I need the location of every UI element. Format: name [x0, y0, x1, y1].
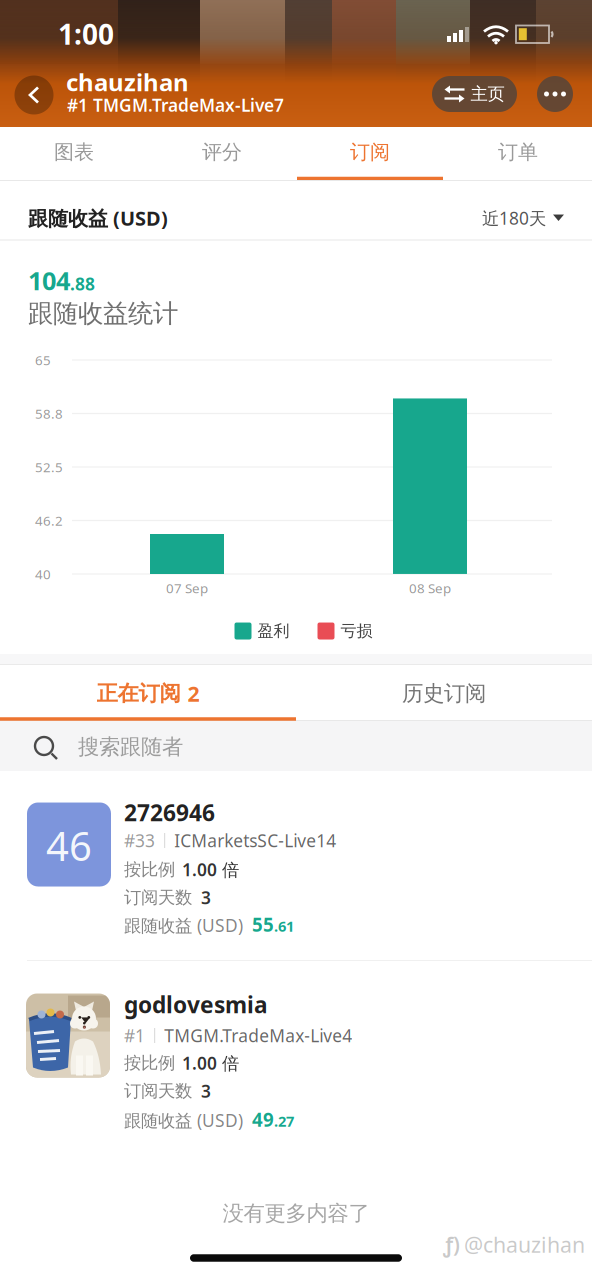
staticText: 1.00 倍: [182, 1051, 239, 1074]
staticText: 亏损: [340, 621, 372, 641]
staticText: 65: [35, 351, 51, 369]
staticText: 跟随收益 (USD): [28, 205, 168, 231]
button[interactable]: Search followers: [0, 721, 592, 771]
staticText: 2: [187, 679, 199, 708]
staticText: #1 TMGM.TradeMax-Live7: [67, 93, 284, 116]
staticText: 盈利: [257, 621, 289, 641]
staticText: 订阅: [350, 140, 390, 164]
staticText: 历史订阅: [402, 680, 486, 707]
staticText: .61: [274, 916, 294, 936]
staticText: 52.5: [35, 458, 63, 476]
staticText: 07 Sep: [166, 579, 208, 597]
staticText: TMGM.TradeMax-Live4: [164, 1024, 352, 1047]
button[interactable]: Back: [14, 75, 53, 114]
staticText: 1.00 倍: [182, 858, 239, 881]
staticText: #1: [124, 1024, 145, 1047]
staticText: 2726946: [124, 797, 215, 827]
staticText: 订阅天数: [124, 1080, 192, 1102]
staticText: 3: [201, 886, 211, 909]
staticText: 订单: [498, 140, 538, 164]
staticText: @chauzihan: [464, 1230, 585, 1259]
staticText: 1:00: [58, 15, 114, 53]
staticText: 08 Sep: [409, 579, 451, 597]
staticText: godlovesmia: [124, 989, 268, 1019]
staticText: .27: [274, 1111, 294, 1131]
staticText: 58.8: [35, 405, 63, 422]
button[interactable]: 图表: [0, 125, 148, 178]
button[interactable]: 46: [0, 771, 592, 961]
staticText: 正在订阅: [96, 680, 180, 707]
staticText: chauzihan: [66, 66, 189, 98]
button[interactable]: 近180天: [404, 200, 564, 236]
staticText: 搜索跟随者: [78, 734, 183, 760]
staticText: 跟随收益 (USD): [124, 1109, 243, 1132]
staticText: 3: [201, 1079, 211, 1102]
staticText: 订阅天数: [124, 887, 192, 908]
staticText: .88: [70, 272, 95, 295]
staticText: 49: [252, 1107, 274, 1132]
staticText: 55: [252, 912, 274, 937]
staticText: #33: [124, 829, 155, 852]
button[interactable]: 主页: [432, 76, 517, 112]
staticText: 40: [35, 565, 51, 583]
button[interactable]: 正在订阅: [0, 668, 296, 718]
staticText: 跟随收益统计: [28, 298, 178, 329]
staticText: 按比例: [124, 1052, 175, 1074]
staticText: 46: [46, 819, 92, 872]
button[interactable]: 订阅: [296, 125, 444, 178]
staticText: 没有更多内容了: [222, 1200, 369, 1227]
staticText: 跟随收益 (USD): [124, 914, 243, 937]
button[interactable]: 评分: [148, 125, 296, 178]
staticText: 46.2: [35, 512, 63, 529]
button[interactable]: 订单: [444, 125, 592, 178]
staticText: 图表: [54, 140, 94, 164]
staticText: 按比例: [124, 859, 175, 880]
staticText: 主页: [470, 83, 504, 105]
staticText: 评分: [202, 140, 242, 164]
button[interactable]: 历史订阅: [296, 668, 592, 718]
staticText: ICMarketsSC-Live14: [174, 829, 336, 852]
button[interactable]: More: [537, 76, 573, 112]
staticText: 104: [28, 264, 70, 297]
button[interactable]: godlovesmia: [0, 961, 592, 1153]
staticText: ƒ): [443, 1230, 460, 1259]
staticText: 近180天: [482, 206, 546, 229]
